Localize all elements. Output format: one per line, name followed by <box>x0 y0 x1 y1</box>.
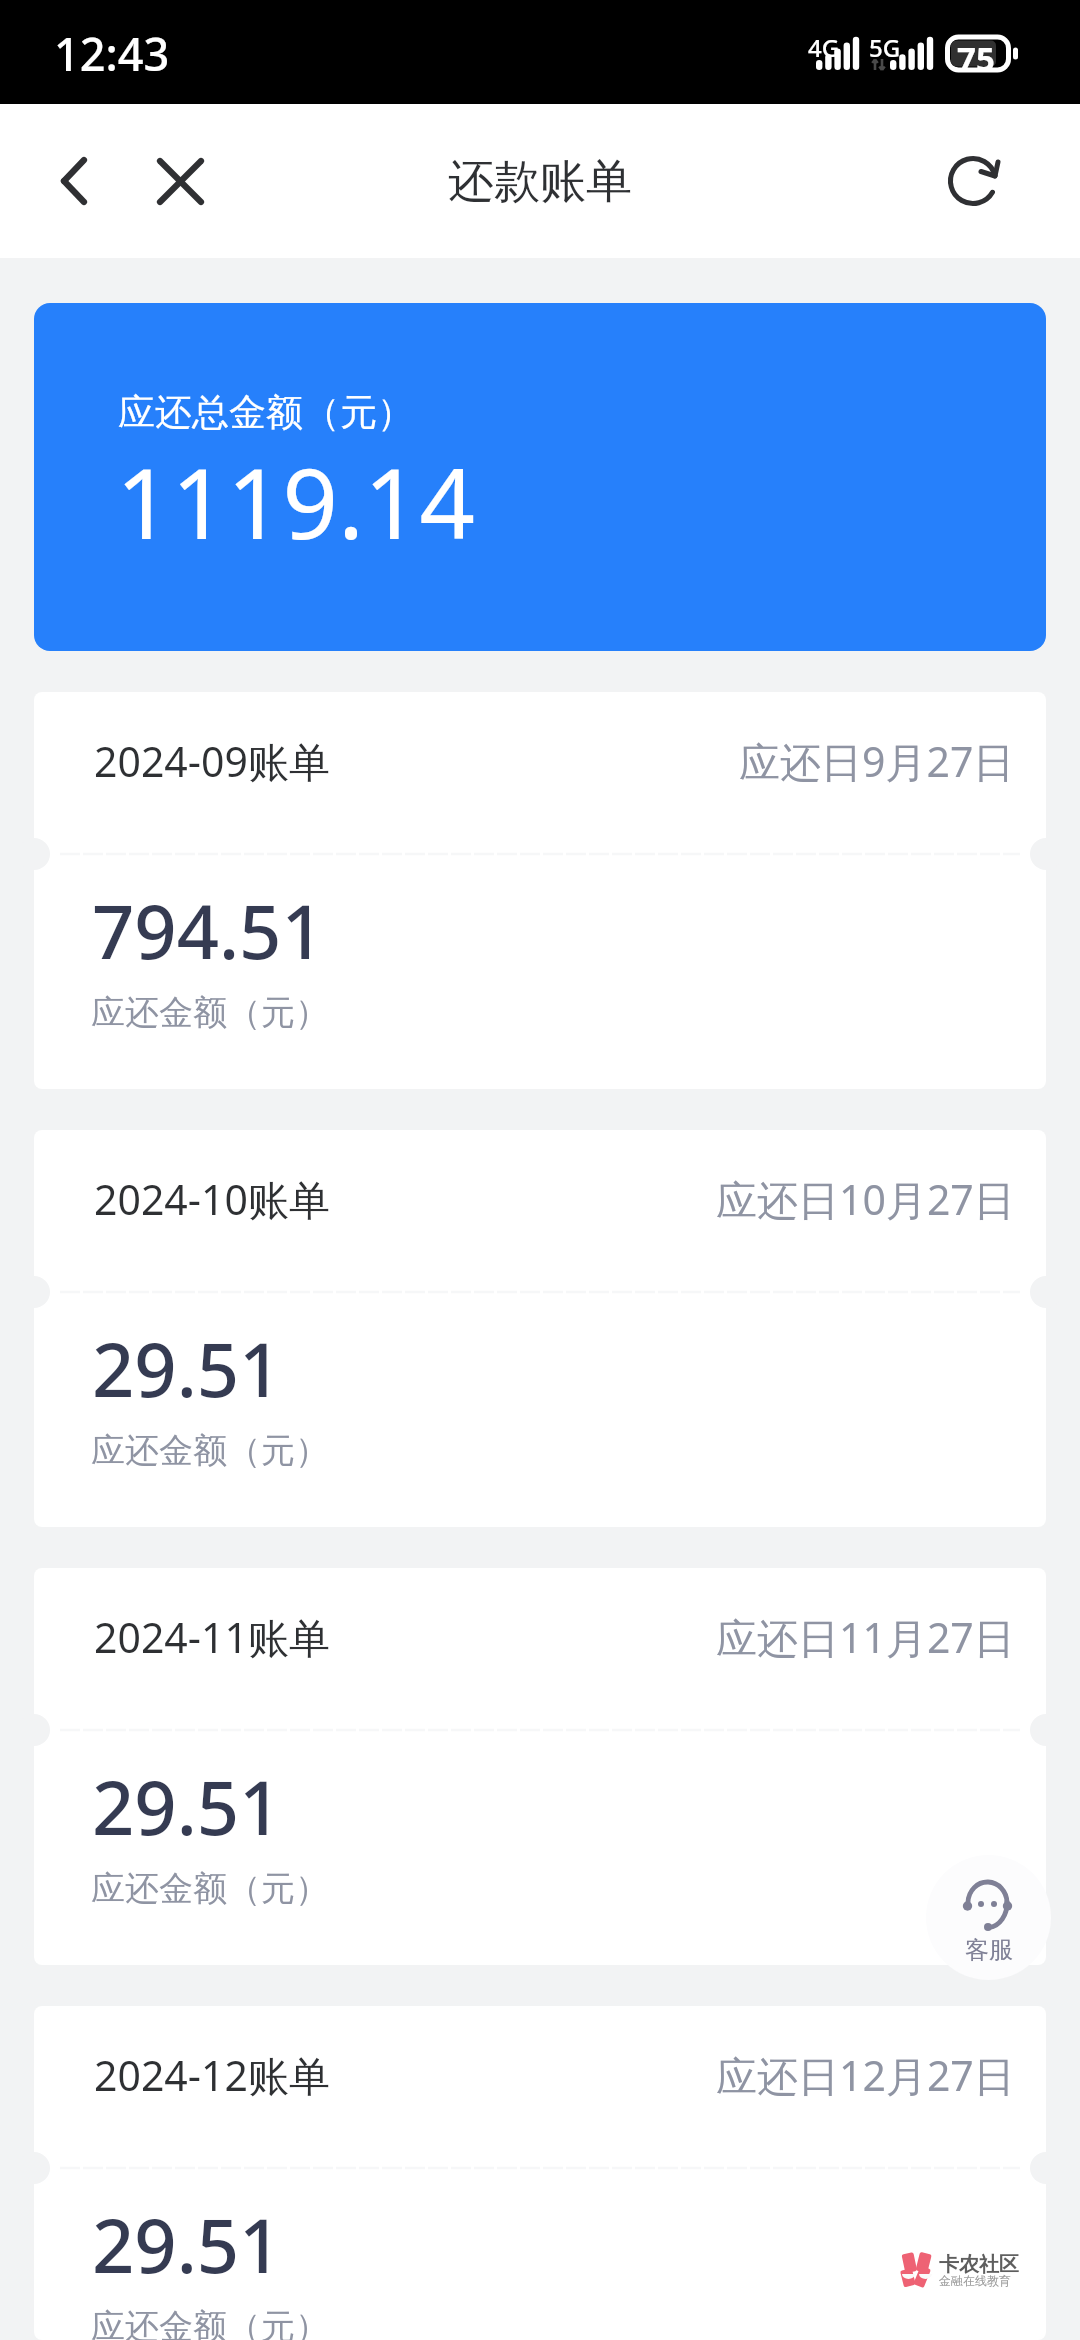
staticText: 1119.14 <box>116 435 475 567</box>
staticText: 还款账单 <box>448 153 632 211</box>
staticText: 4G <box>808 31 840 64</box>
staticText: 应还金额（元） <box>91 991 329 1034</box>
button[interactable]: 2024-12账单 <box>34 2006 1046 2340</box>
staticText: 应还日10月27日 <box>716 1171 1015 1227</box>
staticText: 2024-12账单 <box>94 2047 330 2103</box>
button[interactable]: 客服 <box>926 1855 1051 1980</box>
staticText: 29.51 <box>92 1318 282 1419</box>
staticText: 2024-09账单 <box>94 733 330 789</box>
staticText: 12:43 <box>54 23 170 84</box>
button[interactable]: 2024-09账单 <box>34 692 1046 1089</box>
button[interactable]: Refresh <box>917 125 1029 237</box>
button[interactable]: 2024-11账单 <box>34 1568 1046 1965</box>
staticText: 2024-11账单 <box>94 1609 330 1665</box>
staticText: 应还金额（元） <box>91 1429 329 1472</box>
button[interactable]: 应还总金额（元） <box>34 303 1046 651</box>
staticText: 应还金额（元） <box>91 1867 329 1910</box>
staticText: 2024-10账单 <box>94 1171 330 1227</box>
button[interactable]: Back <box>18 125 130 237</box>
staticText: 应还总金额（元） <box>118 389 414 436</box>
staticText: 应还日11月27日 <box>716 1609 1015 1665</box>
staticText: 应还金额（元） <box>91 2305 329 2340</box>
staticText: 卡农社区 <box>939 2252 1019 2277</box>
staticText: 75 <box>957 36 995 81</box>
staticText: 794.51 <box>92 880 324 981</box>
staticText: 客服 <box>965 1935 1013 1965</box>
staticText: 应还日12月27日 <box>716 2047 1015 2103</box>
button[interactable]: 2024-10账单 <box>34 1130 1046 1527</box>
staticText: 29.51 <box>92 2194 282 2295</box>
button[interactable]: Close <box>124 125 236 237</box>
staticText: 金融在线教育 <box>939 2273 1011 2288</box>
staticText: 应还日9月27日 <box>739 733 1015 789</box>
staticText: 29.51 <box>92 1756 282 1857</box>
staticText: 5G <box>869 31 901 64</box>
